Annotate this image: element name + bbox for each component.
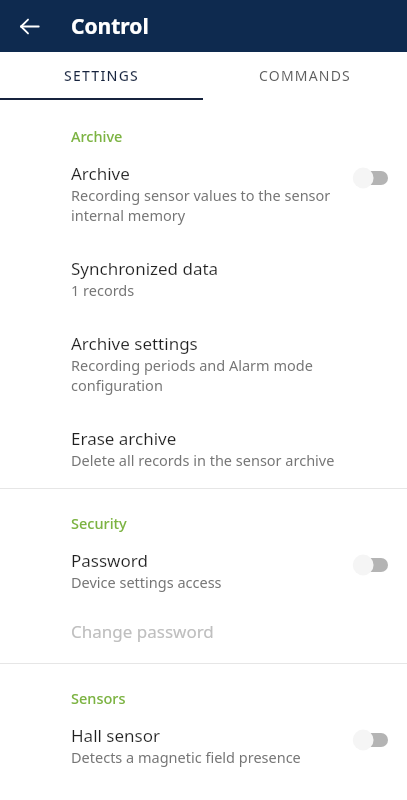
staticText: Archive: [71, 162, 130, 185]
button[interactable]: Back: [6, 3, 52, 49]
staticText: Sensors: [71, 688, 126, 708]
staticText: SETTINGS: [64, 66, 139, 85]
staticText: Change password: [71, 620, 214, 643]
staticText: Password: [71, 549, 148, 572]
staticText: Archive settings: [71, 332, 198, 355]
staticText: Erase archive: [71, 427, 177, 450]
staticText: Archive: [71, 126, 123, 146]
staticText: COMMANDS: [259, 66, 351, 85]
staticText: Control: [71, 12, 149, 41]
staticText: Delete all records in the sensor archive: [71, 450, 335, 470]
staticText: Hall sensor: [71, 724, 161, 747]
button[interactable]: Toggle Archive: [351, 165, 391, 191]
button[interactable]: Toggle Hall sensor: [351, 727, 391, 753]
button[interactable]: Archive settings: [0, 310, 407, 405]
button[interactable]: Synchronized data: [0, 235, 407, 310]
staticText: Detects a magnetic field presence: [71, 747, 301, 767]
staticText: Synchronized data: [71, 257, 219, 280]
button[interactable]: Change password: [0, 602, 407, 663]
button[interactable]: Toggle Password: [351, 552, 391, 578]
staticText: 1 records: [71, 280, 135, 300]
staticText: Recording periods and Alarm mode configu…: [71, 355, 381, 395]
button[interactable]: Archive: [0, 150, 407, 235]
staticText: Recording sensor values to the sensor in…: [71, 185, 341, 225]
button[interactable]: SETTINGS: [0, 52, 203, 98]
button[interactable]: COMMANDS: [203, 52, 407, 98]
button[interactable]: Password: [0, 537, 407, 602]
staticText: Device settings access: [71, 572, 222, 592]
staticText: Security: [71, 513, 127, 533]
button[interactable]: Erase archive: [0, 405, 407, 488]
button[interactable]: Hall sensor: [0, 712, 407, 783]
